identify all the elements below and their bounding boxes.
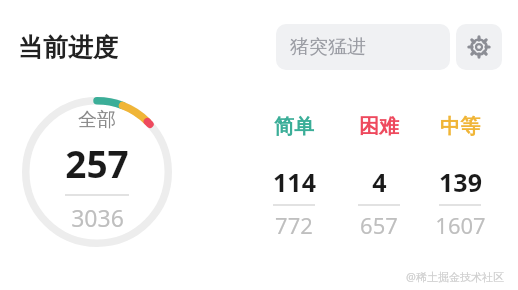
staticText: @稀土掘金技术社区 (406, 269, 504, 284)
staticText: 全部 (78, 108, 116, 132)
staticText: 猪突猛进 (290, 35, 366, 59)
button[interactable]: 简单 (262, 114, 326, 240)
staticText: 114 (273, 165, 316, 199)
staticText: 中等 (440, 114, 480, 139)
staticText: 简单 (274, 114, 314, 139)
button[interactable]: 困难 (347, 114, 411, 240)
staticText: 257 (65, 138, 129, 188)
staticText: 4 (372, 165, 387, 199)
button[interactable]: 猪突猛进 (276, 24, 450, 70)
staticText: 657 (360, 210, 398, 240)
staticText: 139 (439, 165, 482, 199)
button[interactable]: 全部 (22, 97, 172, 247)
staticText: 困难 (359, 114, 399, 139)
staticText: 1607 (435, 210, 486, 240)
button[interactable]: Settings (456, 24, 502, 70)
staticText: 当前进度 (18, 32, 118, 63)
staticText: 3036 (71, 202, 124, 233)
button[interactable]: 中等 (428, 114, 492, 240)
staticText: 772 (275, 210, 313, 240)
